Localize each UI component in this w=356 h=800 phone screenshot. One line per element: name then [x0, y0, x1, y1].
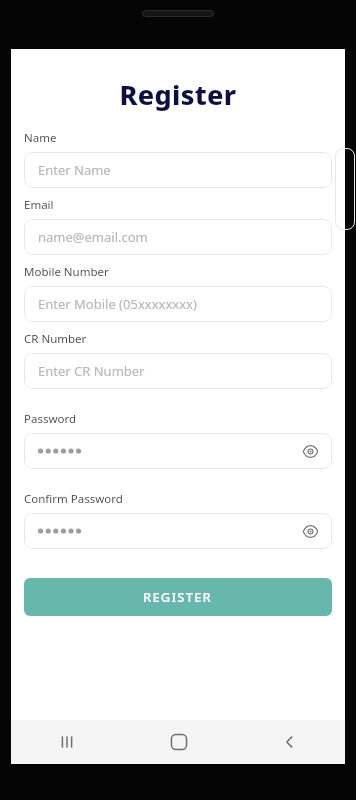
staticText: REGISTER [143, 588, 213, 606]
staticText: Enter Name [38, 161, 111, 179]
staticText: Password [24, 411, 77, 427]
button[interactable]: name@email.com [24, 219, 332, 255]
button[interactable]: Show password [24, 513, 332, 549]
button[interactable]: Show password [299, 520, 321, 542]
button[interactable]: Back [234, 720, 345, 764]
button[interactable]: Enter Mobile (05xxxxxxxx) [24, 286, 332, 322]
staticText: CR Number [24, 331, 87, 347]
staticText: name@email.com [38, 228, 148, 246]
button[interactable]: Enter CR Number [24, 353, 332, 389]
button[interactable]: Enter Name [24, 152, 332, 188]
staticText: Mobile Number [24, 264, 109, 280]
staticText: Name [24, 130, 57, 146]
staticText: Register [11, 76, 345, 113]
staticText: Confirm Password [24, 491, 123, 507]
button[interactable]: Home [123, 720, 234, 764]
staticText: Enter Mobile (05xxxxxxxx) [38, 295, 197, 313]
button[interactable]: REGISTER [24, 578, 332, 616]
button[interactable]: Show password [299, 440, 321, 462]
staticText: Enter CR Number [38, 362, 145, 380]
staticText: Email [24, 197, 54, 213]
button[interactable]: Show password [24, 433, 332, 469]
button[interactable]: Recent apps [11, 720, 123, 764]
